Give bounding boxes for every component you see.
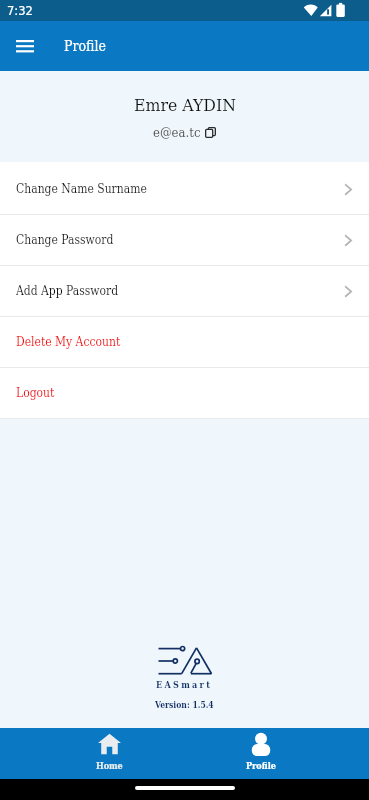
staticText: e@ea.tc bbox=[153, 125, 201, 140]
button[interactable]: Change Password bbox=[0, 215, 369, 265]
staticText: Home bbox=[96, 761, 123, 772]
button[interactable]: Logout bbox=[0, 368, 369, 418]
staticText: Delete My Account bbox=[16, 335, 121, 349]
button[interactable]: Open navigation drawer bbox=[8, 29, 42, 63]
button[interactable]: Delete My Account bbox=[0, 317, 369, 367]
button[interactable]: Profile bbox=[185, 728, 336, 779]
staticText: Emre AYDIN bbox=[134, 95, 236, 115]
staticText: Profile bbox=[246, 761, 276, 772]
staticText: Logout bbox=[16, 386, 55, 400]
staticText: EASmart bbox=[156, 680, 213, 691]
staticText: Add App Password bbox=[16, 284, 119, 298]
staticText: Change Name Surname bbox=[16, 182, 147, 196]
other: Copy email address bbox=[205, 127, 216, 138]
button[interactable]: Change Name Surname bbox=[0, 164, 369, 214]
staticText: Profile bbox=[64, 38, 106, 54]
button[interactable]: e@ea.tc bbox=[149, 125, 220, 140]
staticText: Change Password bbox=[16, 233, 114, 247]
button[interactable]: Add App Password bbox=[0, 266, 369, 316]
staticText: 7:32 bbox=[7, 4, 33, 17]
staticText: Version: 1.5.4 bbox=[155, 700, 214, 710]
button[interactable]: Home bbox=[34, 728, 185, 779]
